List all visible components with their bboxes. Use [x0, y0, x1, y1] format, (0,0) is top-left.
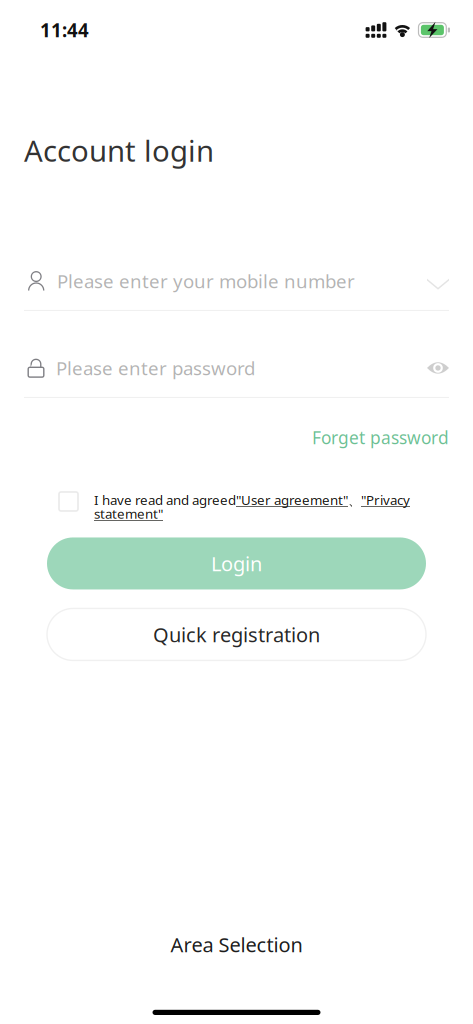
- button[interactable]: Forget password: [312, 426, 449, 449]
- staticText: Forget password: [312, 426, 449, 449]
- staticText: Account login: [24, 131, 214, 170]
- button[interactable]: Login: [47, 537, 426, 589]
- staticText: Area Selection: [170, 931, 302, 958]
- button[interactable]: Agree to terms: [59, 492, 78, 511]
- staticText: Please enter password: [56, 356, 255, 380]
- staticText: Quick registration: [153, 621, 320, 648]
- button[interactable]: Choose country code: [427, 271, 449, 290]
- button[interactable]: Show password: [427, 361, 449, 375]
- button[interactable]: Quick registration: [47, 608, 426, 660]
- staticText: Login: [211, 550, 262, 577]
- button[interactable]: Area Selection: [170, 931, 302, 958]
- staticText: Please enter your mobile number: [57, 269, 355, 293]
- staticText: 11:44: [40, 18, 89, 42]
- staticText: I have read and agreed"User agreement"、"…: [94, 491, 410, 522]
